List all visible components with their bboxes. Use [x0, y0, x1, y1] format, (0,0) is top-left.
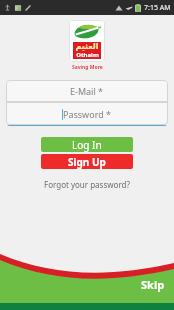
staticText: Saving More [72, 64, 103, 71]
staticText: Password * [63, 108, 112, 120]
staticText: Skip [141, 277, 165, 292]
button[interactable]: Sign Up [41, 154, 133, 169]
button[interactable]: Skip [132, 274, 174, 295]
button[interactable]: Forgot your password? [40, 177, 134, 192]
staticText: Sign Up [68, 155, 106, 169]
button[interactable]: Password * [6, 102, 168, 126]
staticText: Forgot your password? [44, 179, 130, 190]
staticText: العثيم [75, 42, 99, 51]
staticText: E-Mail * [70, 85, 104, 97]
button[interactable]: Log In [41, 137, 133, 152]
staticText: Log In [72, 138, 102, 152]
staticText: Othaim [76, 51, 99, 59]
button[interactable]: E-Mail * [6, 80, 168, 102]
staticText: 7:15 AM [144, 3, 171, 13]
